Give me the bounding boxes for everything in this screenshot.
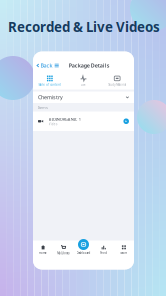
button[interactable]: Back — [36, 61, 53, 70]
staticText: Home — [39, 251, 47, 255]
staticText: My Library — [57, 251, 69, 255]
button[interactable]: Home — [33, 241, 53, 255]
button[interactable]: My Library — [53, 240, 73, 255]
staticText: Back — [41, 62, 53, 69]
button[interactable]: Chemistry — [33, 91, 134, 103]
staticText: BIOINORGANIC 1 — [49, 116, 81, 122]
button[interactable]: Menu — [53, 63, 61, 68]
button[interactable]: Dashboard — [73, 241, 94, 255]
staticText: Dashboard — [76, 251, 90, 255]
staticText: Chemistry — [38, 94, 63, 101]
staticText: Study Material — [108, 83, 126, 86]
button[interactable]: More — [114, 241, 134, 255]
button[interactable]: Study Material — [100, 73, 134, 86]
staticText: Recorded & Live Videos — [8, 18, 160, 36]
staticText: Video — [49, 122, 58, 126]
button[interactable]: Feed — [94, 241, 114, 255]
staticText: Feed — [100, 251, 107, 255]
staticText: Table of content — [38, 83, 61, 86]
button[interactable]: Live — [67, 73, 100, 86]
staticText: More — [120, 251, 127, 255]
staticText: Live — [81, 83, 86, 86]
button[interactable]: BIOINORGANIC 1 — [33, 111, 134, 131]
button[interactable]: Table of content — [33, 73, 67, 86]
staticText: Package Details — [69, 62, 110, 69]
staticText: Items — [38, 105, 48, 110]
